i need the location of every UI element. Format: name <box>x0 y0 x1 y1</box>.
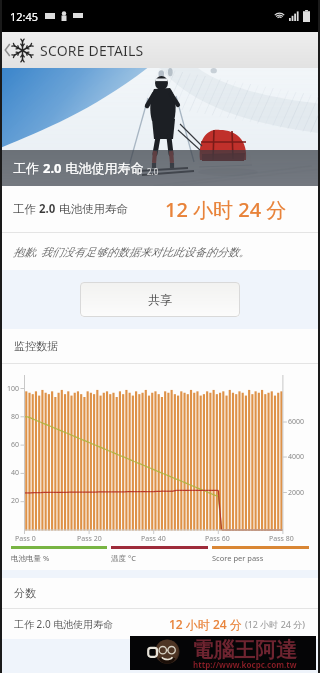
staticText: Score per pass <box>212 553 264 563</box>
button[interactable]: 电池电量 % <box>11 546 107 563</box>
staticText: SCORE DETAILS <box>40 41 144 60</box>
staticText: 12 小时 24 分 <box>165 196 287 223</box>
staticText: 电池使用寿命 <box>62 159 144 177</box>
staticText: 电池使用寿命 <box>56 201 128 217</box>
staticText: 工作 <box>13 201 39 217</box>
staticText: 電腦王阿達 <box>192 637 297 663</box>
staticText: 12 小时 24 分 <box>169 616 242 632</box>
staticText: 2.0 <box>43 159 62 177</box>
button[interactable]: 共享 <box>80 282 240 317</box>
staticText: 抱歉, 我们没有足够的数据来对比此设备的分数。 <box>13 244 250 259</box>
button[interactable]: Back <box>2 35 13 65</box>
staticText: 工作 <box>13 159 43 177</box>
staticText: Pass 60 <box>205 534 230 544</box>
staticText: Pass 40 <box>141 534 166 544</box>
staticText: 监控数据 <box>14 339 58 353</box>
button[interactable]: 工作 2.0 电池使用寿命 <box>14 609 306 639</box>
staticText: 80 <box>11 412 20 422</box>
staticText: Pass 0 <box>15 534 36 544</box>
staticText: 2.0 <box>39 201 56 217</box>
staticText: 20 <box>11 496 20 506</box>
staticText: 60 <box>11 440 20 450</box>
button[interactable]: Score per pass <box>212 546 309 563</box>
staticText: 温度 °C <box>111 553 136 563</box>
staticText: 分数 <box>14 586 36 600</box>
staticText: 共享 <box>148 292 172 307</box>
staticText: 6000 <box>288 417 305 427</box>
staticText: 40 <box>11 468 20 478</box>
staticText: 电池电量 % <box>11 553 50 563</box>
button[interactable]: 工作 <box>13 186 287 232</box>
staticText: 工作 2.0 电池使用寿命 <box>14 617 114 631</box>
staticText: 4000 <box>288 452 305 462</box>
staticText: 2000 <box>288 488 305 498</box>
button[interactable]: 温度 °C <box>111 546 208 563</box>
staticText: 2.0 <box>147 166 159 177</box>
staticText: http://www.kocpc.com.tw <box>193 659 297 670</box>
staticText: 12:45 <box>10 9 39 24</box>
staticText: (12 小时 24 分) <box>245 618 306 630</box>
staticText: Pass 20 <box>77 534 102 544</box>
staticText: Pass 80 <box>269 534 294 544</box>
staticText: 100 <box>7 384 20 394</box>
